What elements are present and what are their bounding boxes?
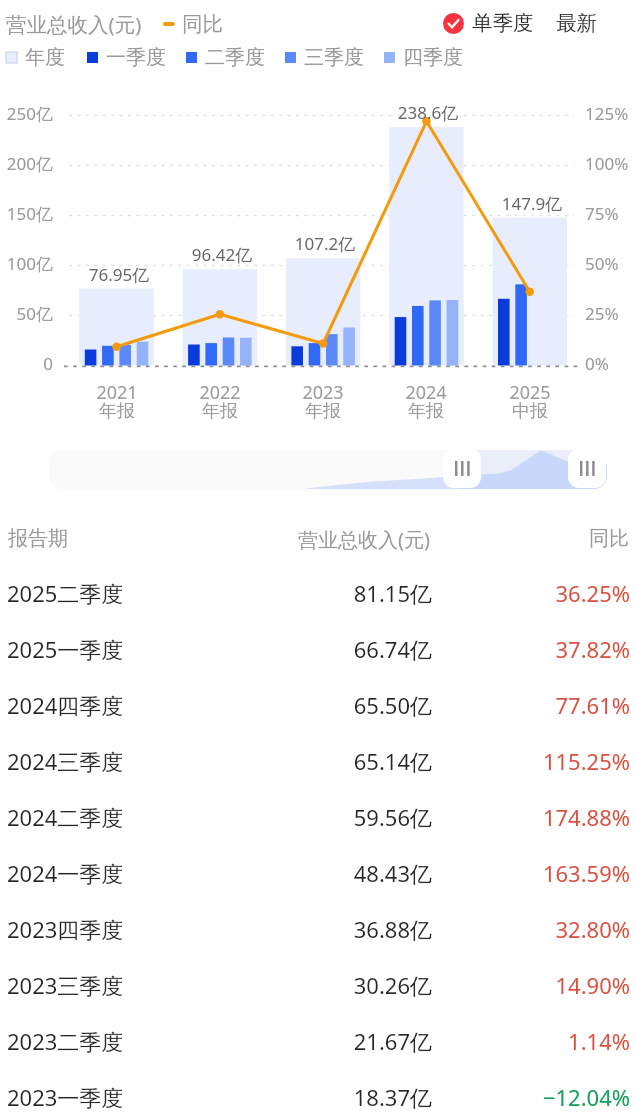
staticText: 2025 中报 — [480, 380, 580, 422]
staticText: 21.67亿 — [180, 1026, 432, 1056]
staticText: 65.14亿 — [180, 746, 432, 776]
button[interactable]: 2023三季度 — [0, 958, 637, 1008]
staticText: 59.56亿 — [180, 802, 432, 832]
staticText: 年度 — [25, 45, 65, 70]
staticText: 0 — [0, 352, 53, 375]
staticText: 107.2亿 — [275, 232, 375, 255]
button[interactable]: 2025二季度 — [0, 566, 637, 616]
staticText: 2023一季度 — [7, 1082, 124, 1112]
staticText: 一季度 — [106, 45, 166, 70]
staticText: 三季度 — [304, 45, 364, 70]
staticText: 2024三季度 — [7, 746, 124, 776]
staticText: 96.42亿 — [172, 243, 272, 266]
button[interactable]: 2025一季度 — [0, 622, 637, 672]
staticText: 48.43亿 — [180, 858, 432, 888]
button[interactable]: 四季度 — [384, 45, 463, 70]
staticText: 174.88% — [460, 802, 630, 832]
staticText: 100亿 — [0, 252, 53, 275]
button[interactable]: 2023四季度 — [0, 902, 637, 952]
button[interactable]: Left range handle — [443, 449, 481, 488]
button[interactable]: 2024四季度 — [0, 678, 637, 728]
staticText: 150亿 — [0, 202, 53, 225]
button[interactable]: 2024二季度 — [0, 790, 637, 840]
button[interactable]: Right range handle — [568, 449, 606, 488]
staticText: 250亿 — [0, 102, 53, 125]
button[interactable]: 2024三季度 — [0, 734, 637, 784]
staticText: 报告期 — [8, 526, 68, 551]
button[interactable]: 一季度 — [87, 45, 166, 70]
staticText: 77.61% — [460, 690, 630, 720]
button[interactable]: 三季度 — [285, 45, 364, 70]
staticText: 14.90% — [460, 970, 630, 1000]
button[interactable]: 最新 — [556, 10, 597, 36]
staticText: 66.74亿 — [180, 634, 432, 664]
staticText: 30.26亿 — [180, 970, 432, 1000]
staticText: 50% — [585, 252, 619, 275]
button[interactable]: 2023二季度 — [0, 1014, 637, 1064]
staticText: −12.04% — [460, 1082, 630, 1112]
staticText: 单季度 — [472, 10, 534, 36]
button[interactable]: 2024一季度 — [0, 846, 637, 896]
staticText: 50亿 — [0, 302, 53, 325]
staticText: 65.50亿 — [180, 690, 432, 720]
staticText: 115.25% — [460, 746, 630, 776]
staticText: 营业总收入(元) — [6, 10, 142, 38]
staticText: 2023 年报 — [273, 380, 373, 422]
staticText: 200亿 — [0, 152, 53, 175]
staticText: 2022 年报 — [170, 380, 270, 422]
staticText: 二季度 — [205, 45, 265, 70]
staticText: 125% — [585, 102, 629, 125]
staticText: 1.14% — [460, 1026, 630, 1056]
button[interactable]: 2023一季度 — [0, 1070, 637, 1117]
staticText: 2025二季度 — [7, 578, 124, 608]
staticText: 163.59% — [460, 858, 630, 888]
button[interactable]: 二季度 — [186, 45, 265, 70]
staticText: 2025一季度 — [7, 634, 124, 664]
staticText: 2024四季度 — [7, 690, 124, 720]
staticText: 32.80% — [460, 914, 630, 944]
staticText: 同比 — [460, 526, 629, 551]
staticText: 2023四季度 — [7, 914, 124, 944]
staticText: 2024一季度 — [7, 858, 124, 888]
staticText: 75% — [585, 202, 619, 225]
staticText: 238.6亿 — [378, 101, 478, 124]
staticText: 37.82% — [460, 634, 630, 664]
staticText: 2021 年报 — [67, 380, 167, 422]
staticText: 18.37亿 — [180, 1082, 432, 1112]
staticText: 76.95亿 — [69, 263, 169, 286]
staticText: 36.25% — [460, 578, 630, 608]
staticText: 同比 — [182, 11, 223, 37]
button[interactable]: 单季度 — [443, 10, 534, 36]
staticText: 营业总收入(元) — [180, 526, 430, 553]
staticText: 100% — [585, 152, 629, 175]
staticText: 36.88亿 — [180, 914, 432, 944]
staticText: 81.15亿 — [180, 578, 432, 608]
staticText: 2024 年报 — [376, 380, 476, 422]
staticText: 2023三季度 — [7, 970, 124, 1000]
staticText: 最新 — [556, 10, 597, 36]
staticText: 147.9亿 — [482, 192, 582, 215]
button[interactable]: 年度 — [6, 45, 65, 70]
staticText: 0% — [585, 352, 609, 375]
staticText: 25% — [585, 302, 619, 325]
staticText: 2024二季度 — [7, 802, 124, 832]
staticText: 四季度 — [403, 45, 463, 70]
staticText: 2023二季度 — [7, 1026, 124, 1056]
